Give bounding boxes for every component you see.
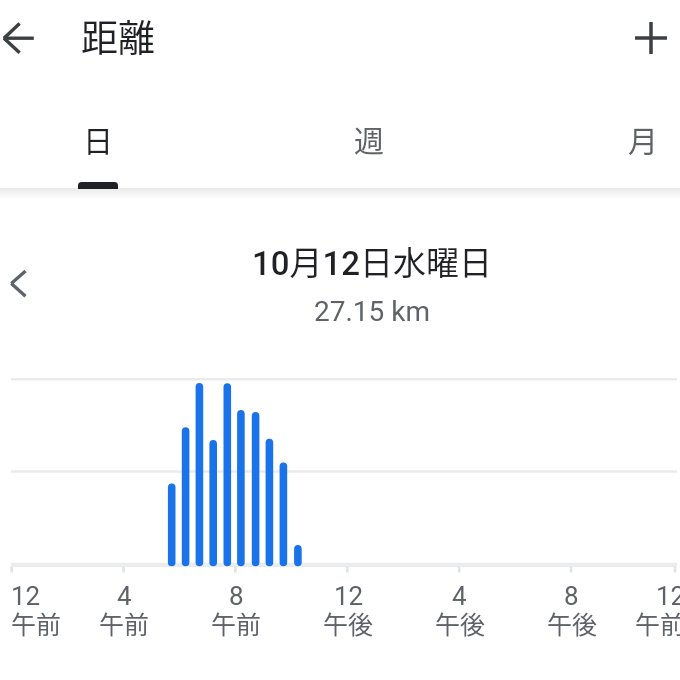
button[interactable]: Back (0, 10, 47, 66)
button[interactable]: Previous day (0, 262, 44, 306)
button[interactable]: Add (623, 10, 679, 66)
button[interactable]: 週 (309, 95, 429, 188)
button[interactable]: 月 (583, 95, 680, 188)
staticText: 午前 (211, 605, 262, 641)
staticText: 27.15 km (122, 295, 622, 328)
staticText: 午前 (11, 605, 62, 641)
staticText: 月 (628, 117, 658, 160)
staticText: 日 (83, 117, 113, 160)
staticText: 距離 (81, 9, 155, 63)
staticText: 午後 (323, 605, 374, 641)
staticText: 4 (117, 581, 132, 611)
staticText: 4 (452, 581, 467, 611)
button[interactable]: 日 (38, 95, 158, 188)
staticText: 12 (656, 581, 680, 611)
staticText: 12 (334, 581, 364, 611)
staticText: 8 (564, 581, 579, 611)
staticText: 週 (354, 117, 384, 160)
staticText: 12 (11, 581, 41, 611)
staticText: 午後 (547, 605, 598, 641)
staticText: 午後 (435, 605, 486, 641)
staticText: 8 (229, 581, 244, 611)
staticText: 午前 (635, 605, 680, 641)
staticText: 10月12日水曜日 (122, 237, 622, 285)
staticText: 午前 (99, 605, 150, 641)
